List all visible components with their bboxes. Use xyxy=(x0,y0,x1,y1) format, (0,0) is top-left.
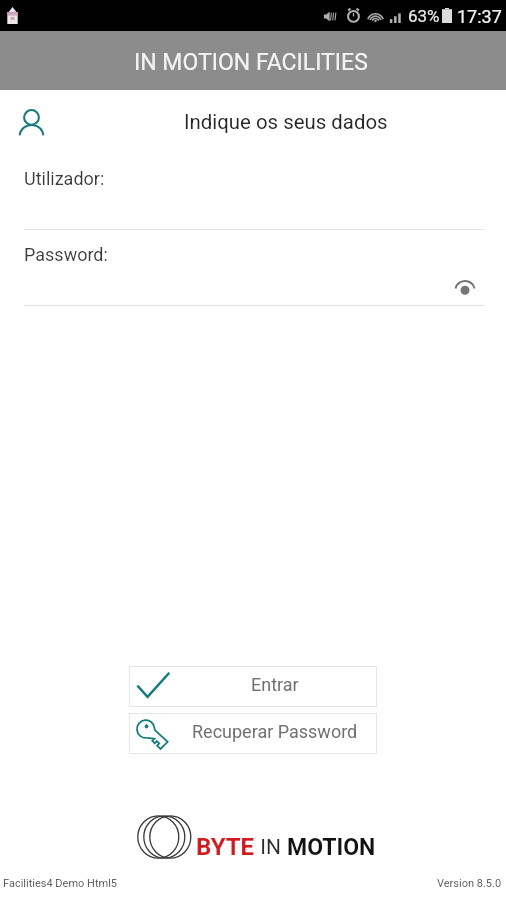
staticText: MOTION xyxy=(287,834,376,861)
button[interactable]: Entrar xyxy=(129,666,377,707)
staticText: IN MOTION FACILITIES xyxy=(134,49,368,76)
staticText: Recuperar Password xyxy=(192,721,358,742)
button[interactable]: Password: xyxy=(24,240,484,306)
staticText: BYTE xyxy=(196,833,255,861)
staticText: IN xyxy=(255,835,287,860)
staticText: Indique os seus dados xyxy=(184,110,388,134)
staticText: 63% xyxy=(408,6,440,26)
staticText: Entrar xyxy=(251,674,299,695)
staticText: Utilizador: xyxy=(24,168,105,189)
staticText: Version 8.5.0 xyxy=(437,877,502,890)
staticText: 17:37 xyxy=(457,6,502,27)
button[interactable]: Recuperar Password xyxy=(129,713,377,754)
other: User xyxy=(19,109,44,136)
staticText: Password: xyxy=(24,244,108,265)
button[interactable]: Show password xyxy=(451,274,479,302)
button[interactable]: Utilizador: xyxy=(24,164,484,230)
staticText: Facilities4 Demo Html5 xyxy=(3,877,118,890)
